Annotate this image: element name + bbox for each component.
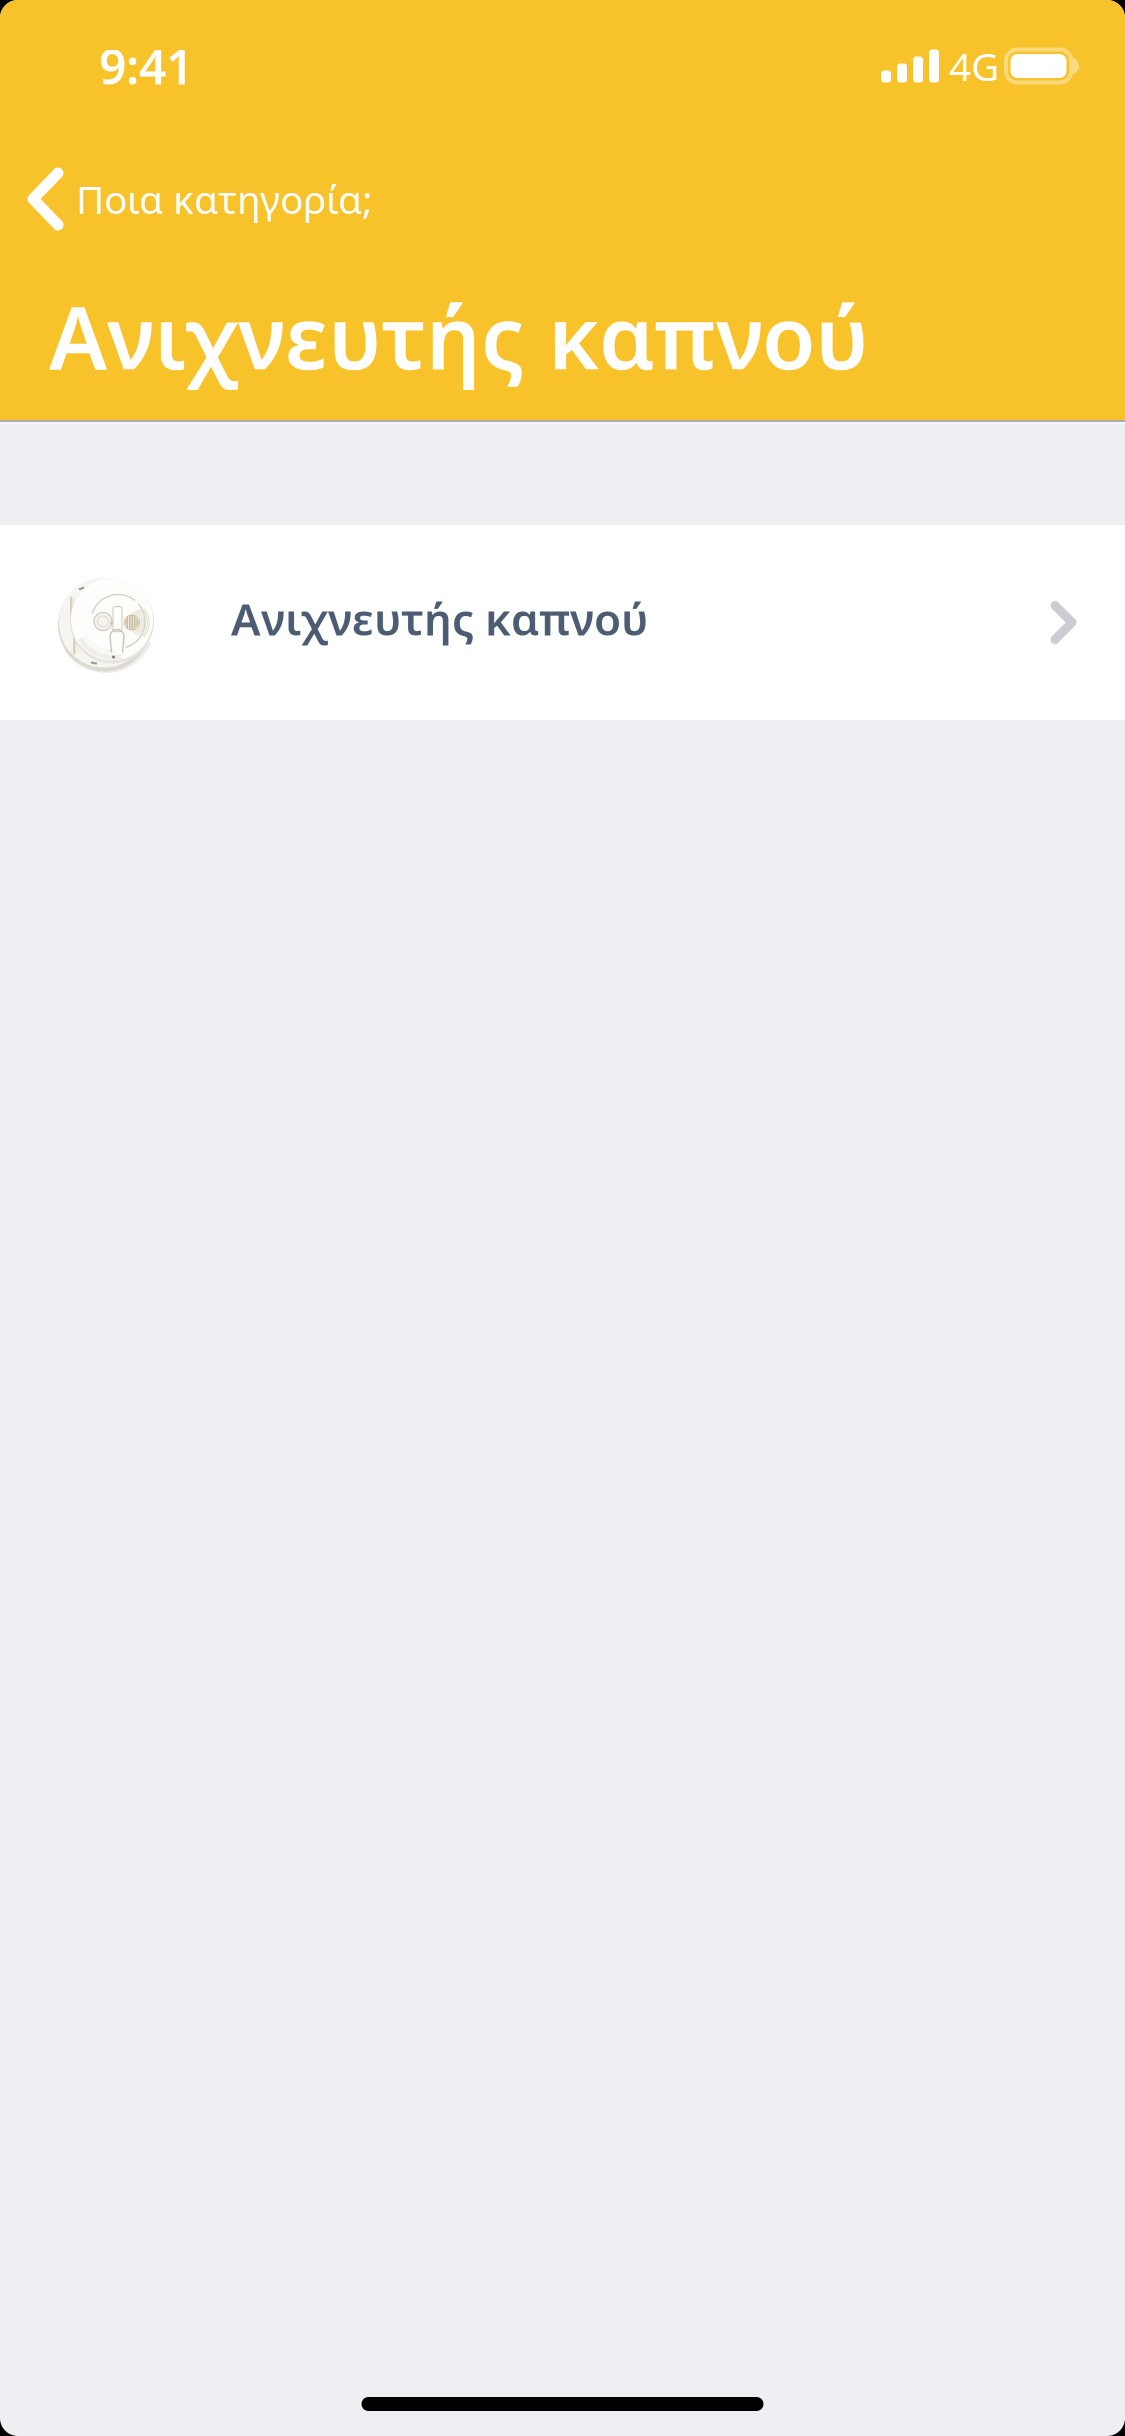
staticText: Ανιχνευτής καπνού <box>49 278 869 393</box>
staticText: Ποια κατηγορία; <box>76 173 372 225</box>
button[interactable]: Ανιχνευτής καπνού <box>0 525 1125 720</box>
button[interactable]: Ποια κατηγορία; <box>0 132 1125 230</box>
staticText: 4G <box>949 40 999 92</box>
staticText: 9:41 <box>99 34 193 98</box>
staticText: Ανιχνευτής καπνού <box>231 589 648 648</box>
